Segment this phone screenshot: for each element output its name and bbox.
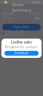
staticText: Order Summary [12, 2, 31, 13]
staticText: $42.00 [30, 12, 41, 15]
staticText: Delivery [2, 17, 13, 20]
button[interactable]: Delivery [0, 16, 43, 21]
button[interactable]: I agree to the Terms of Service [0, 31, 43, 35]
staticText: Free [35, 17, 41, 20]
staticText: This cannot be undone. [4, 45, 38, 49]
staticText: Place Order [13, 25, 30, 29]
staticText: Subtotal [2, 12, 13, 15]
staticText: Continue [14, 51, 28, 55]
staticText: Confirm order [11, 41, 32, 44]
button[interactable]: Subtotal [0, 11, 43, 16]
button[interactable]: Place Order [2, 24, 41, 30]
staticText: I agree to the Terms of Service [5, 30, 26, 37]
button[interactable]: Continue [4, 51, 39, 56]
